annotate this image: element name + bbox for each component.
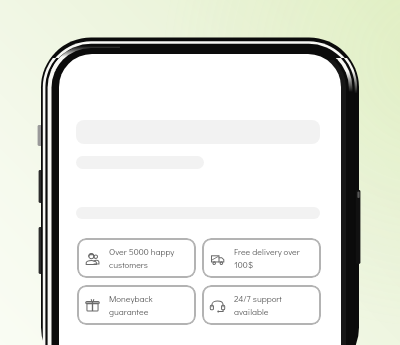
staticText: Free delivery over 100$ (234, 245, 300, 271)
button[interactable]: Moneyback guarantee (77, 285, 196, 325)
button[interactable]: Free delivery over 100 dollars (202, 238, 321, 278)
button[interactable]: Over 5000 happy customers (77, 238, 196, 278)
button[interactable]: 24/7 support available (202, 285, 321, 325)
staticText: Moneyback guarantee (109, 292, 153, 318)
staticText: Over 5000 happy customers (109, 245, 175, 271)
staticText: 24/7 support available (234, 292, 282, 318)
